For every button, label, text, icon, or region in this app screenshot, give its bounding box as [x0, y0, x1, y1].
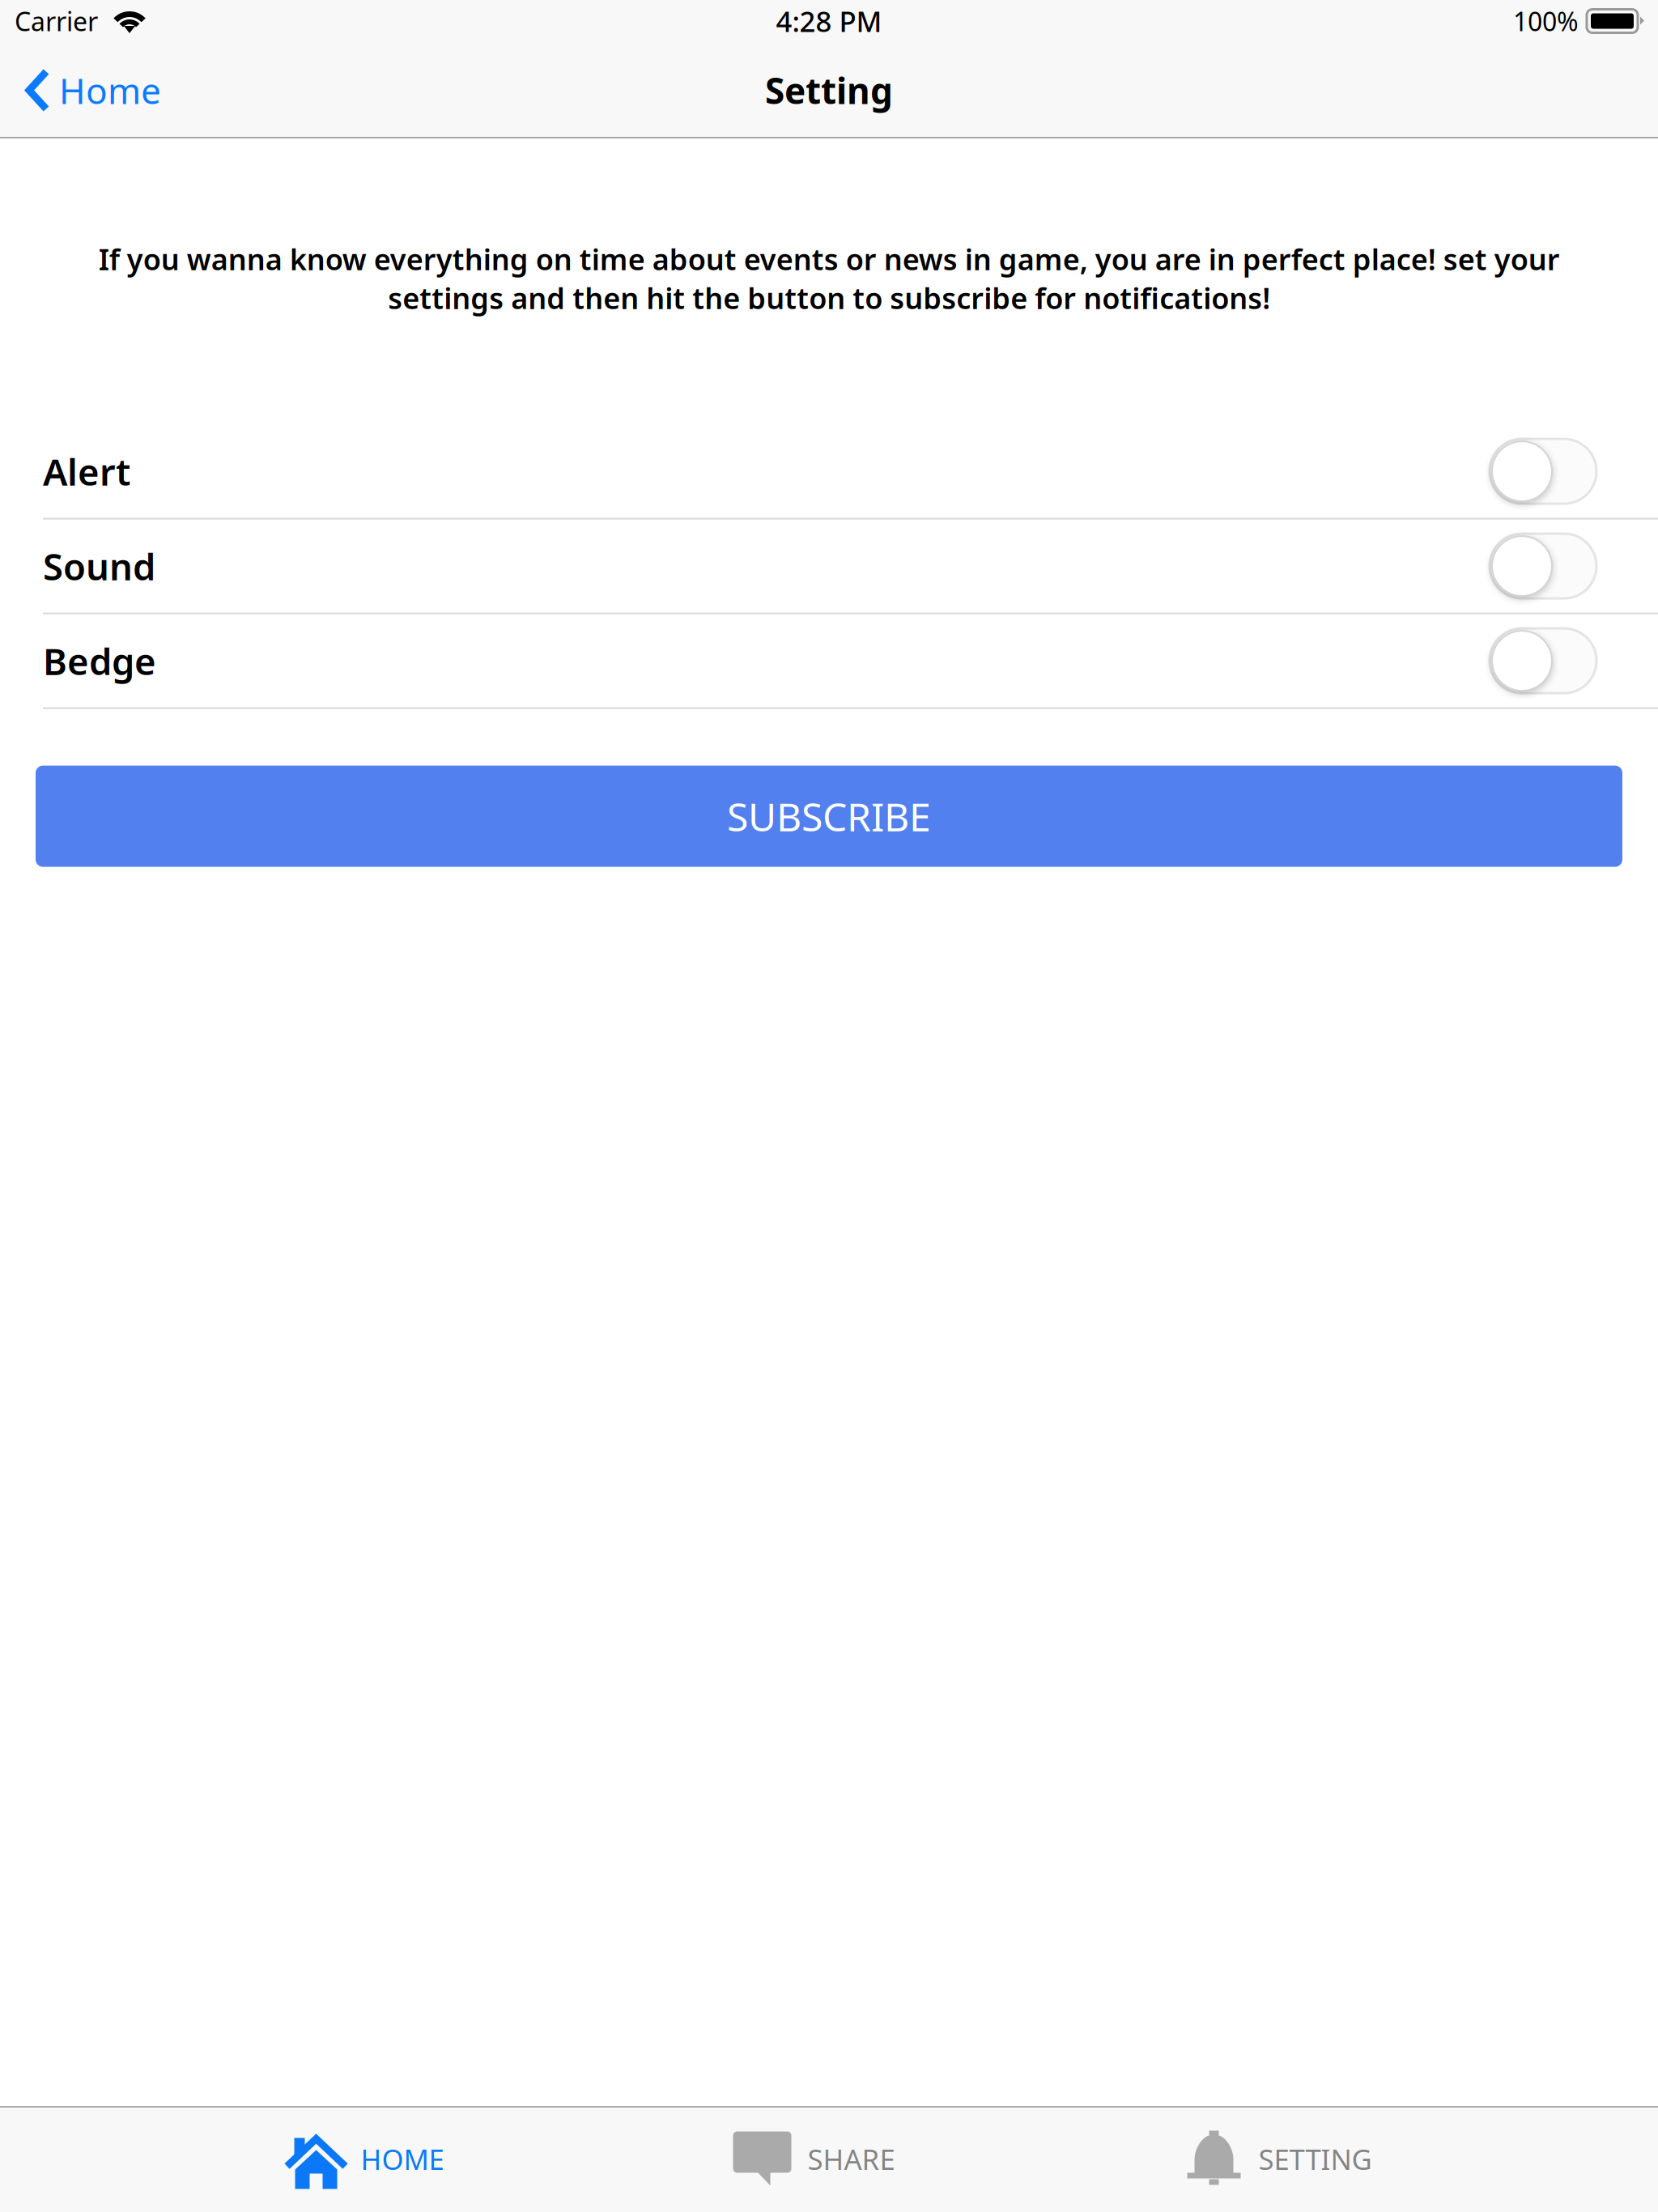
- staticText: SUBSCRIBE: [727, 790, 931, 842]
- button[interactable]: SHARE: [733, 2106, 895, 2212]
- staticText: Bedge: [43, 636, 156, 685]
- staticText: 4:28 PM: [776, 2, 882, 40]
- staticText: Setting: [765, 67, 893, 114]
- staticText: Home: [59, 67, 161, 114]
- button[interactable]: HOME: [286, 2106, 444, 2212]
- button[interactable]: Sound: [0, 519, 1658, 613]
- button[interactable]: Bedge: [0, 614, 1658, 707]
- button[interactable]: SUBSCRIBE: [36, 766, 1622, 867]
- staticText: If you wanna know everything on time abo…: [98, 240, 1560, 317]
- button[interactable]: SETTING: [1184, 2106, 1372, 2212]
- staticText: SETTING: [1258, 2140, 1372, 2178]
- staticText: Carrier: [15, 4, 98, 38]
- staticText: SHARE: [808, 2140, 895, 2178]
- button[interactable]: Home: [0, 42, 179, 138]
- staticText: HOME: [361, 2140, 444, 2178]
- staticText: Sound: [43, 542, 155, 590]
- button[interactable]: Alert: [0, 425, 1658, 518]
- staticText: 100%: [1513, 4, 1579, 38]
- staticText: Alert: [43, 447, 130, 496]
